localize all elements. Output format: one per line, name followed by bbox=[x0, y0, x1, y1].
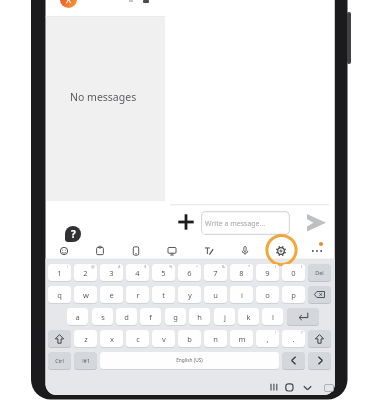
button[interactable] bbox=[165, 244, 179, 258]
button[interactable]: q bbox=[48, 286, 71, 303]
staticText: Write a message... bbox=[205, 219, 266, 229]
staticText: i bbox=[241, 290, 243, 300]
button[interactable]: l bbox=[262, 308, 283, 325]
button[interactable]: 7 bbox=[204, 264, 227, 281]
button[interactable]: o bbox=[256, 286, 279, 303]
button[interactable] bbox=[48, 330, 71, 347]
button[interactable]: f bbox=[140, 308, 161, 325]
button[interactable] bbox=[202, 244, 216, 258]
button[interactable]: k bbox=[238, 308, 259, 325]
button[interactable] bbox=[238, 244, 252, 258]
staticText: Del bbox=[315, 269, 324, 276]
button[interactable]: c bbox=[126, 330, 149, 347]
button[interactable] bbox=[308, 330, 331, 347]
staticText: No messages bbox=[70, 90, 137, 104]
button[interactable]: x bbox=[100, 330, 123, 347]
button[interactable]: h bbox=[189, 308, 210, 325]
staticText: !#1 bbox=[82, 357, 90, 364]
button[interactable] bbox=[287, 308, 319, 325]
staticText: c bbox=[136, 334, 140, 344]
staticText: 6 bbox=[187, 268, 192, 278]
staticText: p bbox=[291, 290, 296, 300]
button[interactable]: 8 bbox=[230, 264, 253, 281]
button[interactable]: z bbox=[74, 330, 97, 347]
staticText: n bbox=[213, 334, 218, 344]
button[interactable]: g bbox=[165, 308, 186, 325]
button[interactable]: r bbox=[126, 286, 149, 303]
staticText: f bbox=[149, 312, 152, 322]
staticText: r bbox=[136, 290, 140, 300]
button[interactable] bbox=[57, 244, 71, 258]
button[interactable]: m bbox=[230, 330, 253, 347]
staticText: 8 bbox=[239, 268, 244, 278]
staticText: l bbox=[272, 312, 274, 322]
button[interactable]: 1 bbox=[48, 264, 71, 281]
button[interactable] bbox=[178, 214, 194, 230]
staticText: s bbox=[101, 312, 105, 322]
button[interactable] bbox=[282, 352, 305, 369]
button[interactable] bbox=[93, 244, 107, 258]
staticText: % bbox=[169, 264, 173, 269]
button[interactable]: j bbox=[214, 308, 235, 325]
button[interactable]: . bbox=[282, 330, 305, 347]
staticText: a bbox=[75, 312, 80, 322]
button[interactable]: 9 bbox=[256, 264, 279, 281]
button[interactable] bbox=[129, 244, 143, 258]
button[interactable]: p bbox=[282, 286, 305, 303]
button[interactable]: English (US) bbox=[100, 352, 279, 369]
staticText: @ bbox=[91, 264, 95, 269]
staticText: # bbox=[118, 264, 121, 269]
button[interactable]: w bbox=[74, 286, 97, 303]
button[interactable]: e bbox=[100, 286, 123, 303]
staticText: k bbox=[246, 312, 251, 322]
staticText: z bbox=[84, 334, 88, 344]
button[interactable]: 5 bbox=[152, 264, 175, 281]
staticText: ( bbox=[275, 264, 277, 269]
button[interactable]: 2 bbox=[74, 264, 97, 281]
button[interactable]: i bbox=[230, 286, 253, 303]
staticText: 0 bbox=[291, 268, 296, 278]
button[interactable]: Write a message... bbox=[201, 211, 290, 235]
button[interactable]: a bbox=[67, 308, 88, 325]
staticText: h bbox=[197, 312, 202, 322]
button[interactable]: y bbox=[178, 286, 201, 303]
button[interactable]: 4 bbox=[126, 264, 149, 281]
button[interactable]: n bbox=[204, 330, 227, 347]
button[interactable]: b bbox=[178, 330, 201, 347]
button[interactable] bbox=[303, 384, 312, 392]
staticText: b bbox=[187, 334, 192, 344]
staticText: $ bbox=[144, 264, 147, 269]
staticText: ! bbox=[275, 330, 277, 335]
button[interactable] bbox=[308, 286, 331, 303]
staticText: e bbox=[109, 290, 114, 300]
button[interactable]: Del bbox=[308, 264, 331, 281]
button[interactable] bbox=[308, 352, 331, 369]
button[interactable]: ? bbox=[65, 226, 81, 242]
staticText: 9 bbox=[265, 268, 270, 278]
button[interactable]: t bbox=[152, 286, 175, 303]
staticText: 2 bbox=[83, 268, 88, 278]
button[interactable]: v bbox=[152, 330, 175, 347]
button[interactable] bbox=[268, 383, 280, 392]
staticText: , bbox=[266, 334, 269, 344]
button[interactable] bbox=[306, 213, 327, 233]
button[interactable]: Ctrl bbox=[48, 352, 71, 369]
button[interactable]: u bbox=[204, 286, 227, 303]
button[interactable]: s bbox=[92, 308, 113, 325]
button[interactable] bbox=[310, 244, 324, 258]
button[interactable] bbox=[285, 383, 294, 392]
button[interactable]: !#1 bbox=[74, 352, 97, 369]
button[interactable]: d bbox=[116, 308, 137, 325]
staticText: x bbox=[110, 334, 114, 344]
button[interactable]: 6 bbox=[178, 264, 201, 281]
staticText: j bbox=[224, 312, 226, 322]
staticText: g bbox=[173, 312, 178, 322]
button[interactable] bbox=[60, 0, 77, 8]
button[interactable]: , bbox=[256, 330, 279, 347]
button[interactable]: 3 bbox=[100, 264, 123, 281]
button[interactable] bbox=[274, 244, 288, 258]
staticText: 3 bbox=[109, 268, 114, 278]
button[interactable]: 0 bbox=[282, 264, 305, 281]
staticText: Ctrl bbox=[55, 357, 64, 364]
staticText: & bbox=[222, 264, 225, 269]
